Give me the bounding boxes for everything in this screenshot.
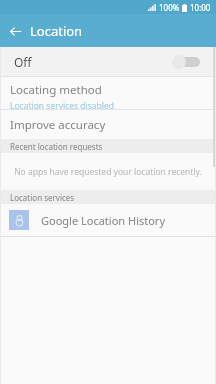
button[interactable]: Improve accuracy xyxy=(0,110,216,139)
button[interactable]: Off xyxy=(0,47,216,76)
button[interactable]: Locating method xyxy=(0,77,216,109)
staticText: Recent location requests xyxy=(10,141,103,152)
button[interactable]: Back xyxy=(0,16,30,46)
staticText: Location services disabled xyxy=(10,100,115,109)
staticText: Location services xyxy=(10,192,75,203)
button[interactable]: Google Location History xyxy=(0,204,216,236)
staticText: 10:00 xyxy=(190,2,211,13)
staticText: Improve accuracy xyxy=(10,117,106,133)
staticText: Google Location History xyxy=(41,213,166,228)
staticText: Location xyxy=(30,22,83,40)
staticText: No apps have requested your location rec… xyxy=(14,166,202,178)
staticText: Locating method xyxy=(10,82,102,98)
staticText: Off xyxy=(14,54,32,70)
staticText: 100% xyxy=(159,2,180,13)
